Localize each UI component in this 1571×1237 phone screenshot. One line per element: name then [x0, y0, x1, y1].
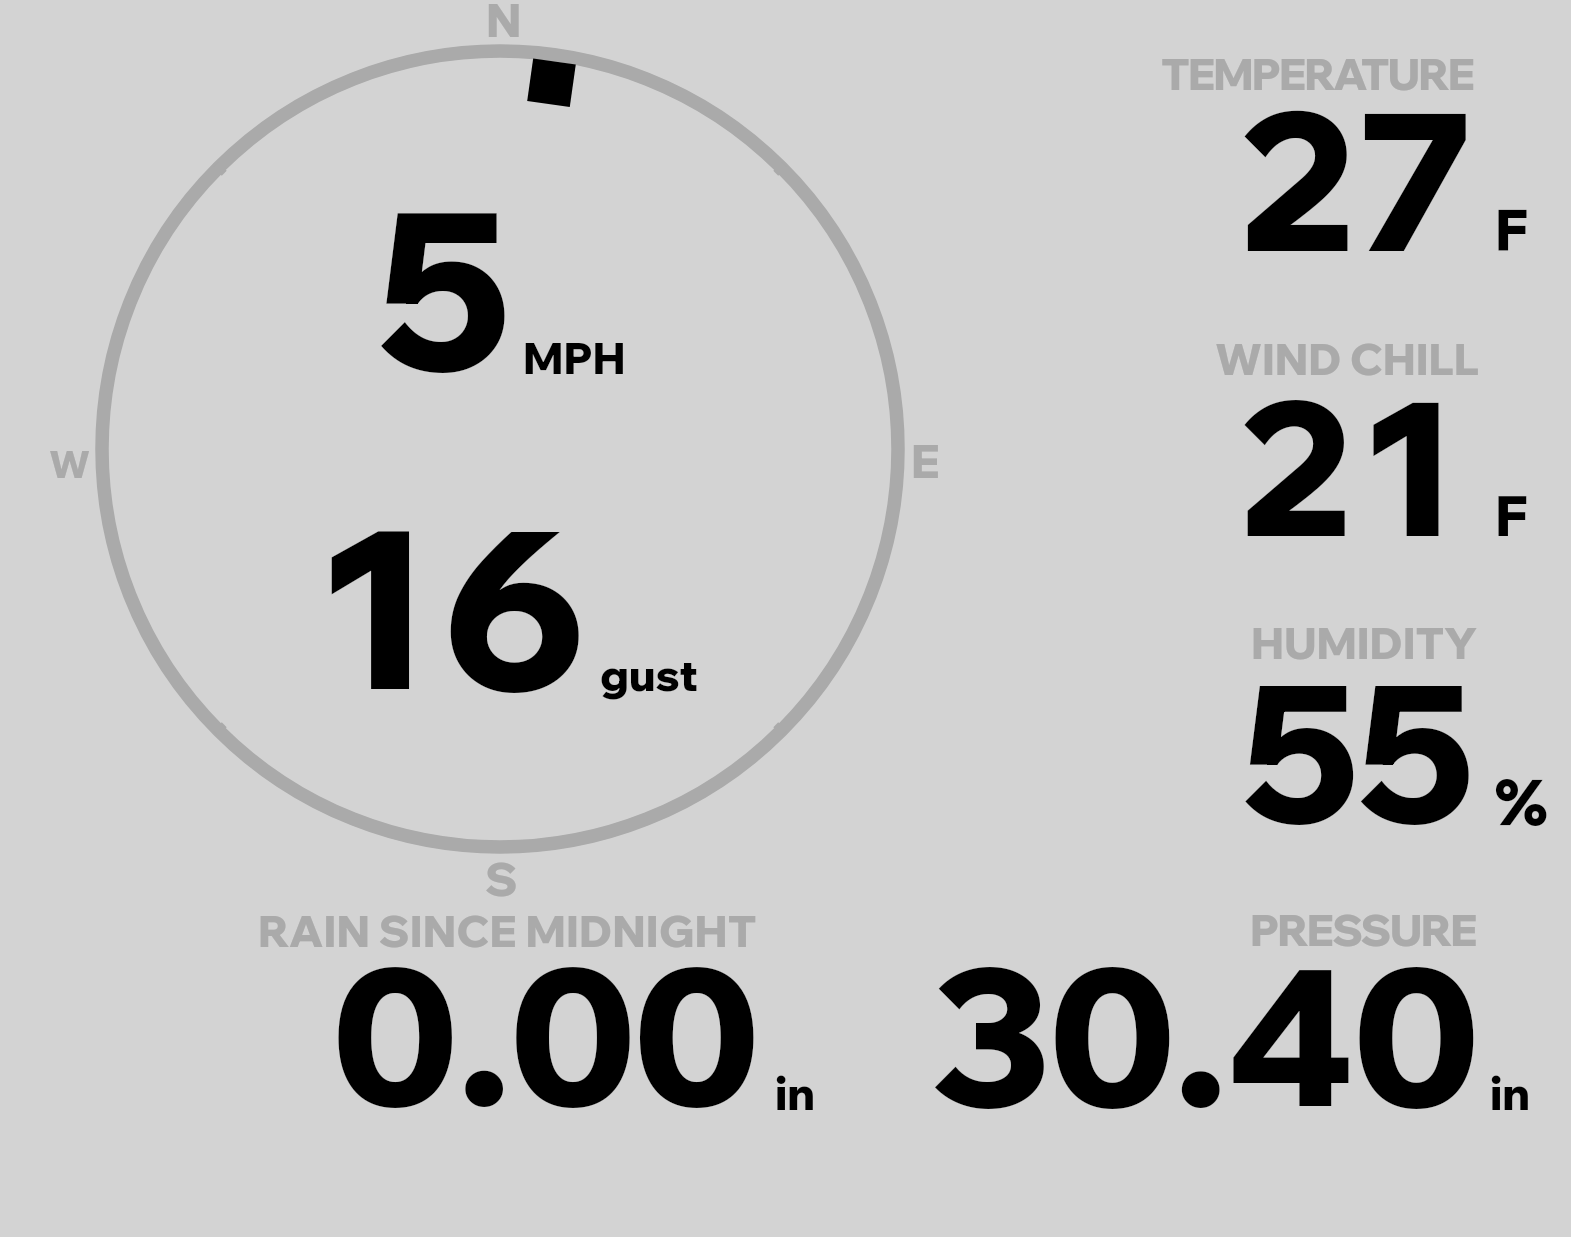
- staticText: F: [1495, 480, 1529, 550]
- staticText: F: [1495, 194, 1529, 265]
- staticText: WIND CHILL: [1215, 331, 1480, 386]
- button[interactable]: Pressure: [890, 880, 1560, 1130]
- button[interactable]: Wind speed and direction: [40, 0, 1000, 900]
- staticText: 21: [1240, 349, 1464, 583]
- staticText: 5: [375, 150, 512, 425]
- staticText: 0.00: [333, 915, 759, 1153]
- staticText: E: [911, 432, 940, 490]
- staticText: 16: [316, 466, 601, 744]
- staticText: HUMIDITY: [1251, 615, 1477, 670]
- button[interactable]: Wind chill: [1100, 305, 1560, 585]
- button[interactable]: Temperature: [1100, 20, 1560, 300]
- staticText: 30.40: [931, 915, 1478, 1153]
- staticText: MPH: [523, 330, 626, 385]
- staticText: in: [1490, 1064, 1531, 1121]
- button[interactable]: Humidity: [1100, 590, 1560, 870]
- staticText: PRESSURE: [1250, 902, 1476, 957]
- staticText: %: [1495, 761, 1548, 840]
- staticText: in: [775, 1064, 816, 1121]
- staticText: RAIN SINCE MIDNIGHT: [258, 903, 757, 958]
- staticText: N: [486, 0, 522, 49]
- button[interactable]: Rain since midnight: [180, 880, 880, 1130]
- staticText: gust: [600, 647, 698, 702]
- staticText: 27: [1240, 58, 1477, 299]
- staticText: TEMPERATURE: [1161, 46, 1474, 101]
- staticText: 55: [1240, 630, 1471, 870]
- staticText: S: [485, 850, 518, 908]
- staticText: W: [49, 440, 91, 488]
